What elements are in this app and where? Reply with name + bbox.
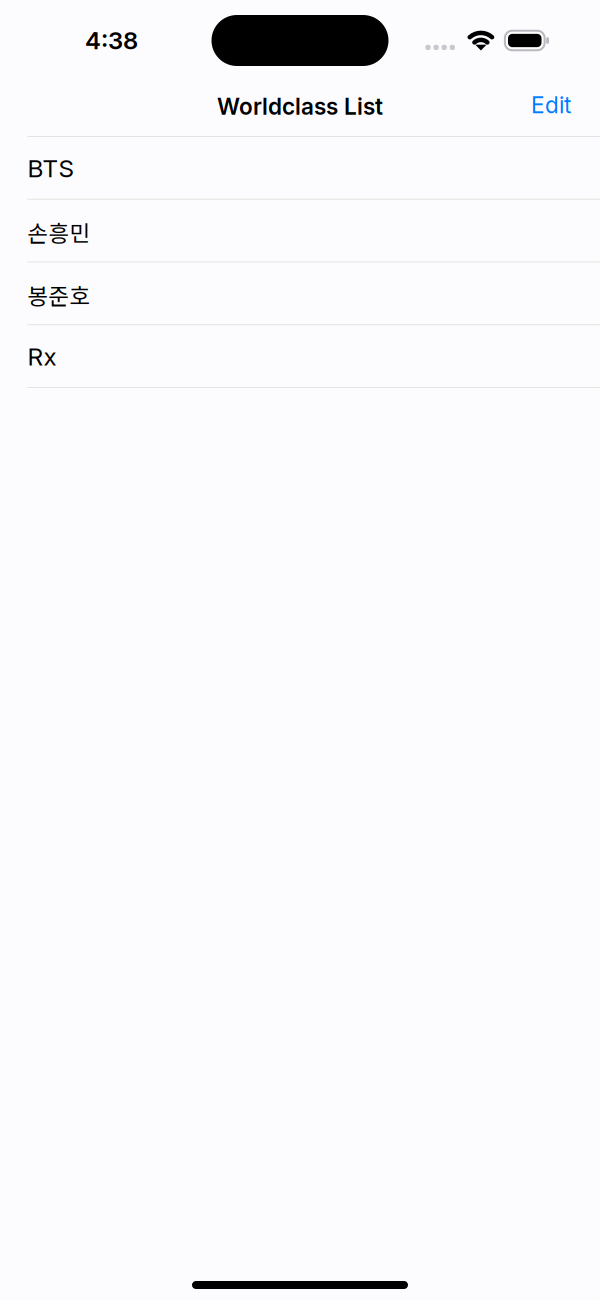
staticText: Edit — [531, 91, 571, 119]
button[interactable]: BTS — [27, 153, 580, 184]
staticText: BTS — [27, 154, 74, 183]
staticText: Worldclass List — [217, 93, 383, 120]
button[interactable]: Edit — [513, 85, 600, 132]
staticText: 4:38 — [85, 26, 138, 55]
staticText: 손흥민 — [27, 216, 90, 248]
button[interactable]: 손흥민 — [27, 216, 580, 247]
staticText: 봉준호 — [27, 278, 90, 311]
button[interactable]: 봉준호 — [27, 278, 580, 309]
button[interactable]: Rx — [27, 341, 580, 372]
staticText: Rx — [27, 342, 56, 371]
